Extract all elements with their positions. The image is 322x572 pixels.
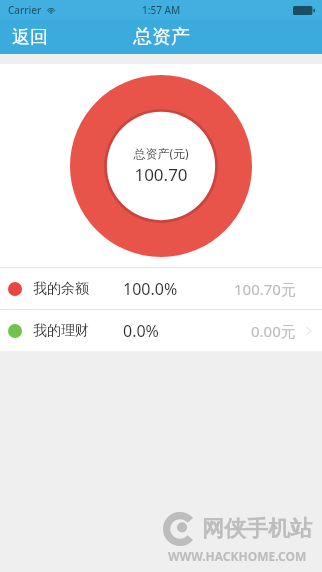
staticText: 0.00元 — [251, 321, 296, 341]
button[interactable]: 我的余额 — [0, 268, 322, 309]
staticText: 100.70元 — [234, 279, 296, 299]
staticText: 100.70 — [134, 163, 188, 186]
button[interactable]: 返回 — [0, 22, 60, 53]
staticText: Carrier — [8, 3, 42, 17]
staticText: 网侠手机站 — [202, 515, 312, 543]
staticText: 我的理财 — [33, 322, 89, 340]
staticText: 返回 — [12, 26, 48, 49]
staticText: 1:57 AM — [142, 3, 181, 17]
staticText: 总资产 — [133, 25, 190, 49]
staticText: 100.0% — [123, 278, 178, 300]
button[interactable]: 我的理财 — [0, 310, 322, 351]
staticText: 我的余额 — [33, 280, 89, 298]
staticText: WWW.HACKHOME.COM — [168, 548, 307, 564]
staticText: 总资产(元) — [133, 145, 189, 161]
staticText: 0.0% — [123, 320, 159, 342]
